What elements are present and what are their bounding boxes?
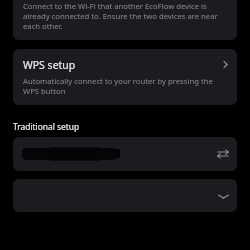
button[interactable]: EcoFlow-DEVICE-5G [13,137,237,171]
staticText: Automatically connect to your router by … [23,76,223,96]
staticText: WPS setup [23,58,76,72]
other: Open WPS setup [219,58,231,70]
button[interactable]: Expand [13,179,237,212]
staticText: Connect to the Wi-Fi that another EcoFlo… [23,1,227,31]
button[interactable]: Connect to the Wi-Fi that another EcoFlo… [13,0,237,40]
other: Expand [216,189,230,203]
button[interactable]: WPS setup [13,49,237,105]
staticText: Traditional setup [13,121,80,132]
other: Switch network [216,147,230,161]
